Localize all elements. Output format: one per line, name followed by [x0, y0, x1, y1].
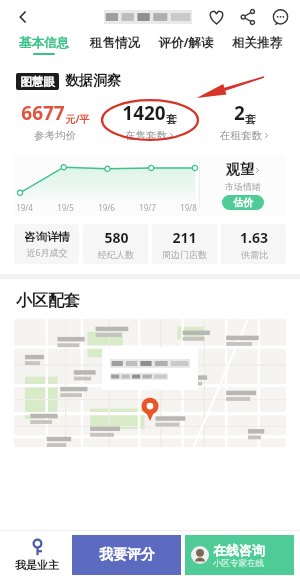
button[interactable]: 211: [152, 224, 217, 264]
button[interactable]: 咨询详情: [14, 224, 79, 264]
button[interactable]: 评价/解读: [150, 34, 221, 55]
staticText: 市场情绪: [225, 181, 261, 192]
button[interactable]: Favorite: [200, 1, 232, 33]
staticText: 咨询详情: [24, 230, 70, 244]
button[interactable]: 在线咨询: [185, 535, 294, 575]
staticText: 参考均价: [34, 129, 76, 142]
staticText: 数据洞察: [65, 72, 121, 90]
button[interactable]: Back: [6, 0, 40, 34]
button[interactable]: 观望: [200, 154, 286, 216]
button[interactable]: 估价: [222, 195, 264, 210]
button[interactable]: 1.63: [221, 224, 286, 264]
staticText: 基本信息: [19, 35, 69, 51]
staticText: 评价/解读: [158, 34, 214, 51]
staticText: 1.63: [240, 228, 268, 247]
staticText: 19/4: [16, 202, 33, 213]
staticText: 2: [234, 100, 245, 126]
staticText: 周边门店数: [162, 249, 207, 260]
staticText: 211: [172, 228, 197, 247]
staticText: 供需比: [241, 249, 268, 260]
staticText: 元/平: [65, 112, 90, 126]
staticText: 近6月成交: [26, 246, 68, 258]
button[interactable]: Map: [14, 319, 286, 447]
button[interactable]: 我是业主: [6, 534, 68, 576]
staticText: 19/8: [180, 202, 197, 213]
staticText: 1420: [122, 100, 166, 126]
staticText: 相关推荐: [232, 35, 282, 51]
staticText: 580: [104, 228, 129, 247]
button[interactable]: Share: [232, 1, 264, 33]
staticText: 估价: [233, 196, 253, 209]
staticText: 19/6: [98, 202, 115, 213]
staticText: 19/7: [139, 202, 156, 213]
button[interactable]: 相关推荐: [221, 35, 292, 55]
button[interactable]: 我要评分: [72, 535, 181, 575]
staticText: 我要评分: [99, 546, 155, 564]
staticText: 我是业主: [15, 558, 59, 572]
button[interactable]: 1420: [102, 98, 197, 144]
staticText: 租售情况: [90, 35, 140, 51]
button[interactable]: 6677: [8, 98, 102, 144]
button[interactable]: 租售情况: [79, 35, 150, 55]
button[interactable]: 2: [197, 98, 292, 144]
staticText: 观望: [226, 161, 254, 179]
staticText: 套: [166, 112, 177, 126]
staticText: 19/5: [57, 202, 74, 213]
staticText: 小区专家在线: [213, 558, 264, 569]
staticText: 小区配套: [16, 291, 80, 311]
staticText: 在线咨询: [213, 542, 265, 558]
staticText: 6677: [21, 100, 65, 126]
staticText: 在租套数: [220, 129, 262, 142]
staticText: 图慧眼: [20, 75, 55, 89]
staticText: 经纪人数: [98, 249, 134, 260]
button[interactable]: 580: [83, 224, 148, 264]
button[interactable]: More: [264, 1, 296, 33]
staticText: 套: [245, 112, 256, 126]
button[interactable]: 基本信息: [8, 35, 79, 55]
staticText: 在售套数: [125, 129, 167, 142]
